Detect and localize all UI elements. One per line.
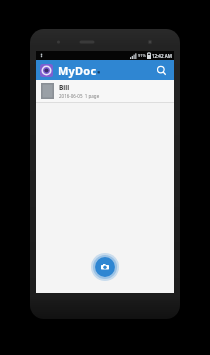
staticText: MyDoc xyxy=(58,63,97,78)
button[interactable]: Bill xyxy=(36,80,174,102)
button[interactable]: Scan with camera xyxy=(91,253,119,281)
staticText: 12:42 AM xyxy=(152,53,172,59)
staticText: 91% xyxy=(138,53,146,58)
button[interactable]: App icon xyxy=(40,64,53,77)
staticText: 2016-06-05 1 page xyxy=(59,93,100,99)
staticText: Bill xyxy=(59,83,70,92)
button[interactable]: Search xyxy=(152,61,170,79)
